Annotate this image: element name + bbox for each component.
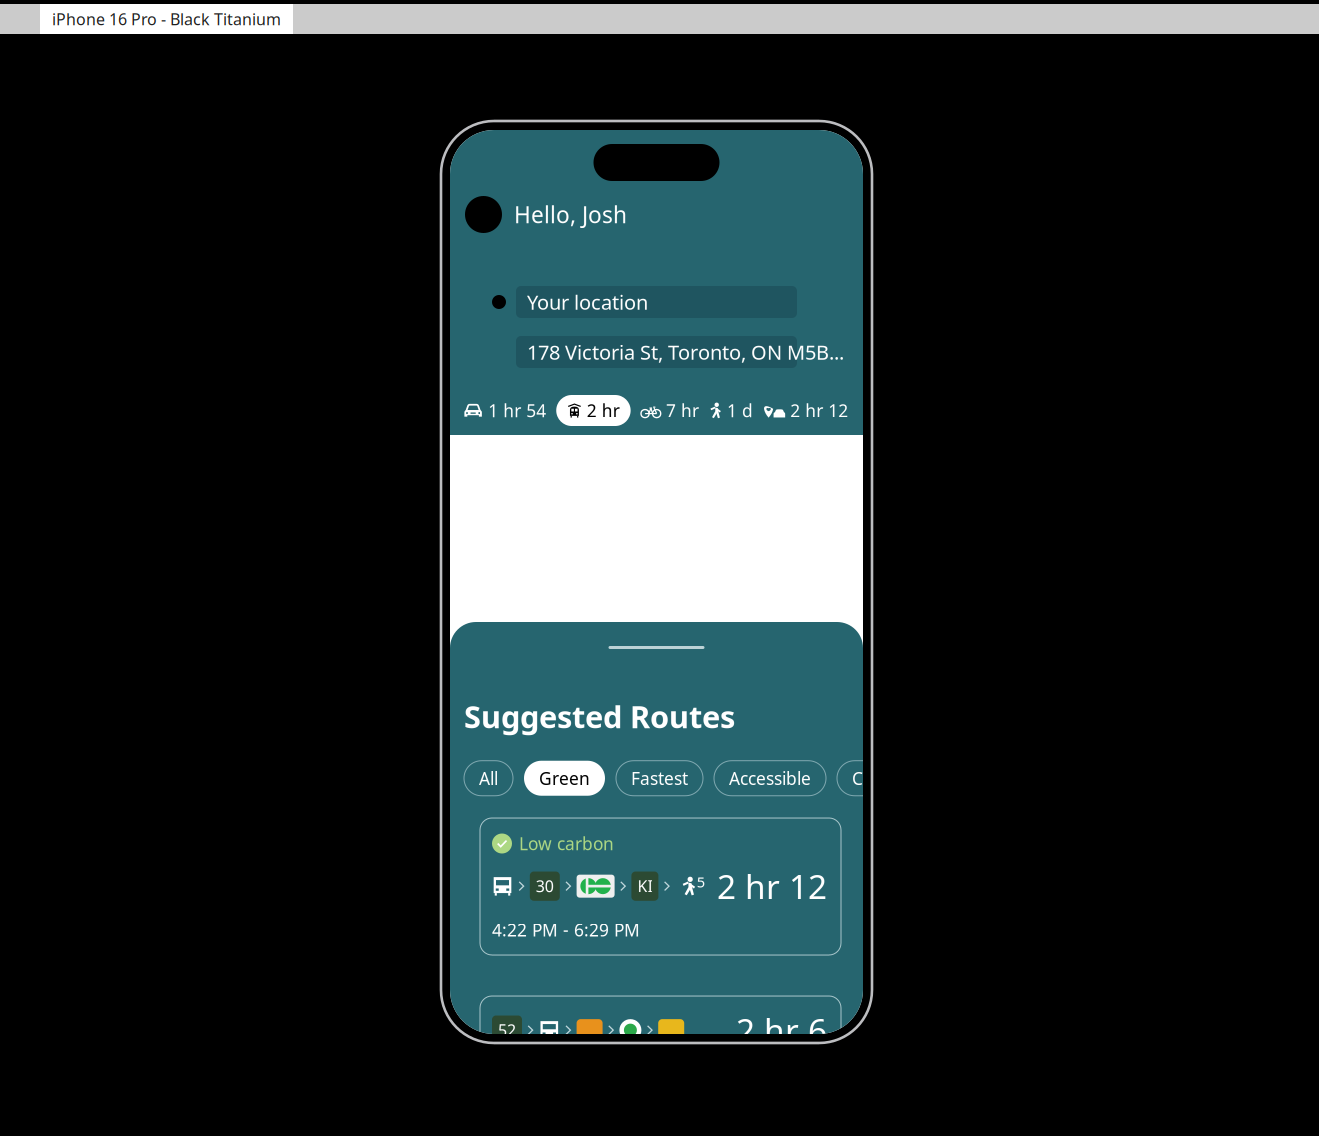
button[interactable]: Fastest: [616, 761, 703, 796]
staticText: 5: [697, 872, 705, 892]
staticText: Fastest: [631, 767, 688, 790]
button[interactable]: Your location: [516, 286, 797, 318]
button[interactable]: 2 hr 12: [763, 399, 848, 422]
staticText: Cheapest: [852, 767, 929, 790]
staticText: All: [479, 767, 498, 790]
staticText: 52: [498, 1019, 516, 1041]
staticText: 2 hr: [587, 399, 620, 422]
button[interactable]: 178 Victoria St, Toronto, ON M5B...: [516, 336, 797, 368]
staticText: Your location: [527, 289, 648, 315]
button[interactable]: 2 hr: [556, 395, 631, 426]
staticText: 4:22 PM - 6:29 PM: [492, 918, 640, 941]
button[interactable]: Cheapest: [837, 761, 944, 796]
staticText: Green: [539, 767, 590, 790]
button[interactable]: All: [464, 761, 513, 796]
staticText: Suggested Routes: [464, 696, 735, 737]
button[interactable]: Profile: [465, 196, 502, 233]
staticText: Hello, Josh: [514, 199, 627, 229]
staticText: Accessible: [729, 767, 811, 790]
staticText: KI: [637, 875, 652, 897]
staticText: 178 Victoria St, Toronto, ON M5B...: [527, 339, 844, 365]
staticText: iPhone 16 Pro - Black Titanium: [52, 8, 281, 30]
staticText: 2 hr 12: [790, 399, 848, 422]
staticText: 7 hr: [666, 399, 699, 422]
button[interactable]: Accessible: [714, 761, 826, 796]
staticText: 1 d: [727, 399, 753, 422]
button[interactable]: Low carbon: [480, 818, 841, 955]
staticText: 2 hr 12: [717, 864, 827, 908]
staticText: 30: [536, 875, 554, 897]
staticText: 1 hr 54: [488, 399, 546, 422]
button[interactable]: 52: [480, 996, 841, 1100]
staticText: Low carbon: [519, 832, 614, 855]
staticText: 2 hr 6: [736, 1008, 827, 1052]
button[interactable]: Green: [524, 761, 605, 796]
button[interactable]: 7 hr: [641, 399, 699, 422]
button[interactable]: 1 d: [709, 399, 753, 422]
button[interactable]: 1 hr 54: [463, 399, 546, 422]
